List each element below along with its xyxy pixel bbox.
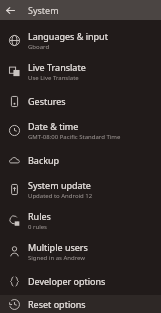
staticText: Live Translate (28, 61, 86, 73)
button[interactable]: Rules (0, 205, 161, 236)
button[interactable]: Live Translate (0, 56, 161, 87)
staticText: Backup (28, 154, 60, 166)
staticText: Languages & input (28, 30, 108, 42)
staticText: Use Live Translate (28, 74, 79, 82)
button[interactable]: Developer options (0, 267, 161, 295)
staticText: Developer options (28, 275, 106, 287)
staticText: Updated to Android 12 (28, 192, 93, 200)
button[interactable]: Reset options (0, 295, 161, 313)
button[interactable]: Back (0, 0, 20, 20)
staticText: 0 rules (28, 223, 47, 231)
staticText: GMT-08:00 Pacific Standard Time (28, 133, 121, 141)
staticText: Reset options (28, 298, 86, 310)
staticText: Date & time (28, 120, 79, 132)
button[interactable]: Languages & input (0, 25, 161, 56)
staticText: Rules (28, 210, 51, 222)
staticText: System update (28, 179, 91, 191)
button[interactable]: System update (0, 174, 161, 205)
staticText: Signed in as Andrew (28, 254, 86, 262)
button[interactable]: Backup (0, 146, 161, 174)
button[interactable]: Gestures (0, 87, 161, 115)
staticText: System (28, 4, 59, 16)
staticText: Gboard (28, 43, 50, 51)
button[interactable]: Date & time (0, 115, 161, 146)
staticText: Gestures (28, 95, 66, 107)
staticText: Multiple users (28, 241, 88, 253)
button[interactable]: Multiple users (0, 236, 161, 267)
